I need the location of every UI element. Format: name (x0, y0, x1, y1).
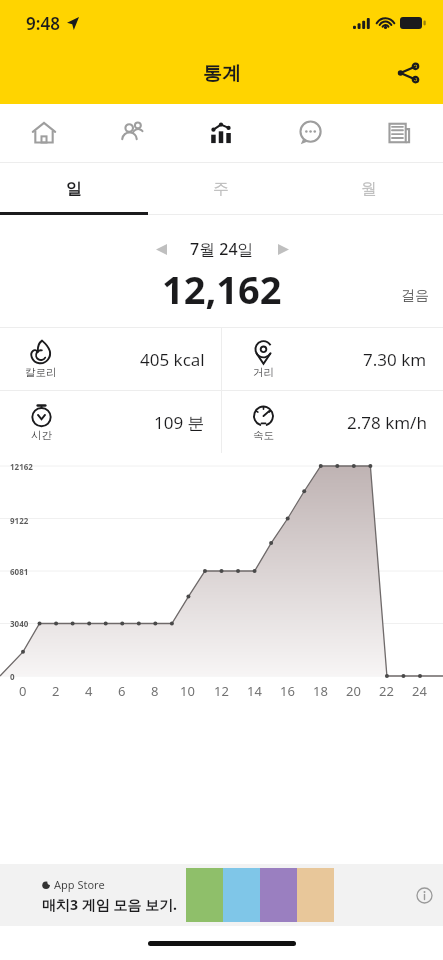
staticText: 12 (214, 682, 229, 700)
staticText: 시간 (31, 429, 52, 442)
staticText: 20 (346, 682, 361, 700)
staticText: 0 (10, 671, 15, 682)
staticText: 9122 (10, 515, 29, 526)
staticText: 405 kcal (140, 348, 205, 371)
button[interactable]: 일 (0, 163, 147, 215)
button[interactable]: 칼로리 (0, 328, 221, 390)
staticText: 0 (19, 682, 27, 700)
staticText: 8 (151, 682, 159, 700)
staticText: 매치3 게임 모음 보기. (42, 895, 177, 914)
staticText: 주 (213, 179, 229, 199)
button[interactable]: 월 (295, 163, 443, 215)
staticText: 월 (361, 179, 377, 199)
staticText: 2 (52, 682, 60, 700)
button[interactable]: Previous day (144, 235, 178, 263)
staticText: 7.30 km (363, 348, 427, 371)
button[interactable]: Friends (88, 104, 176, 162)
button[interactable]: Share (387, 52, 429, 94)
button[interactable]: 주 (147, 163, 295, 215)
staticText: 거리 (253, 366, 274, 379)
staticText: 7월 24일 (190, 238, 254, 260)
button[interactable]: Ad info (413, 884, 435, 906)
button[interactable]: 시간 (0, 391, 221, 453)
staticText: 109 분 (154, 411, 205, 434)
button[interactable]: News (354, 104, 443, 162)
button[interactable]: Home (0, 104, 88, 162)
staticText: 2.78 km/h (347, 411, 427, 434)
button[interactable]: Statistics (176, 104, 265, 162)
staticText: 10 (180, 682, 195, 700)
staticText: 16 (280, 682, 295, 700)
staticText: 3040 (10, 618, 29, 629)
staticText: 12162 (10, 461, 33, 472)
staticText: 12,162 (162, 263, 282, 315)
staticText: 걸음 (401, 287, 429, 305)
button[interactable]: Chat (265, 104, 354, 162)
staticText: 18 (313, 682, 328, 700)
staticText: 4 (85, 682, 93, 700)
staticText: 24 (412, 682, 427, 700)
staticText: App Store (54, 877, 105, 892)
staticText: 6 (118, 682, 126, 700)
staticText: 9:48 (26, 12, 60, 35)
staticText: 통계 (203, 62, 241, 86)
staticText: 일 (66, 179, 82, 199)
staticText: 속도 (253, 429, 274, 442)
staticText: 14 (247, 682, 262, 700)
button[interactable]: Next day (266, 235, 300, 263)
button[interactable]: 거리 (222, 328, 443, 390)
staticText: 칼로리 (25, 366, 57, 379)
staticText: 22 (379, 682, 394, 700)
button[interactable]: 속도 (222, 391, 443, 453)
staticText: 6081 (10, 566, 29, 577)
